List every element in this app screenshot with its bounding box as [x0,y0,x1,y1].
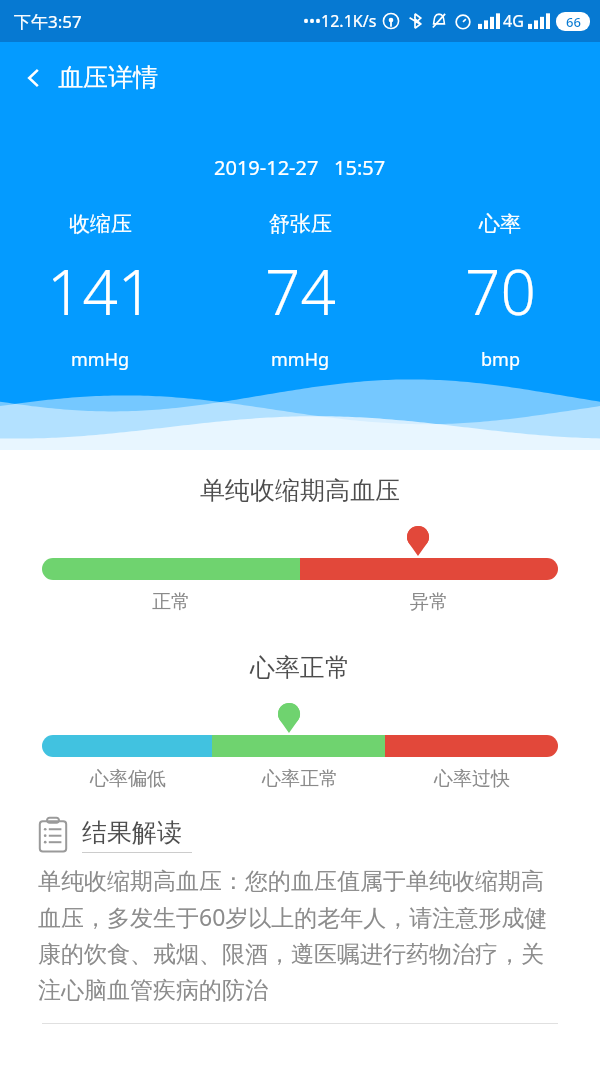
staticText: mmHg [271,347,330,372]
staticText: 结果解读 [82,817,182,848]
staticText: 血压详情 [58,62,158,93]
other: Back [22,66,46,90]
staticText: 心率 [479,211,521,237]
staticText: 70 [465,249,536,333]
staticText: 单纯收缩期高血压：您的血压值属于单纯收缩期高血压，多发生于60岁以上的老年人，请… [38,867,562,1005]
staticText: bmp [481,347,520,372]
button[interactable] [42,735,558,757]
staticText: 舒张压 [269,211,332,237]
staticText: 2019-12-27 15:57 [214,154,386,181]
staticText: 141 [47,249,154,333]
staticText: 74 [265,249,336,333]
staticText: 异常 [300,590,558,614]
button[interactable]: Back [16,56,164,99]
staticText: 收缩压 [69,211,132,237]
staticText: 心率偏低 [42,767,214,791]
staticText: 正常 [42,590,300,614]
staticText: 心率正常 [214,767,386,791]
button[interactable] [42,558,558,580]
staticText: 4G [503,10,524,32]
staticText: 下午3:57 [14,10,82,33]
staticText: mmHg [71,347,130,372]
staticText: 单纯收缩期高血压 [0,475,600,506]
staticText: 心率过快 [386,767,558,791]
staticText: 心率正常 [0,652,600,683]
staticText: •••12.1K/s [303,10,377,32]
staticText: 66 [566,13,581,31]
